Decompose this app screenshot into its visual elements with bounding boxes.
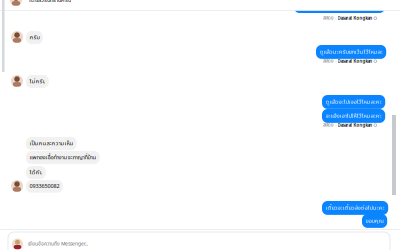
staticText: เป็นคนละความเห็น	[29, 139, 73, 148]
staticText: Dasarat Kongkan	[338, 16, 373, 21]
button[interactable]: ขอบคุณ	[362, 214, 387, 228]
staticText: เขียนข้อความถึง Messenger...	[28, 240, 88, 248]
button[interactable]: จะแจ้งเอาไปให้ไว้ไหมละคะ	[322, 109, 385, 123]
staticText: Dasarat Kongkan	[338, 123, 373, 128]
staticText: Dasarat Kongkan	[338, 59, 373, 64]
staticText: แพทองเอื้อทำงานจะภาญาที่บ้าน	[29, 153, 96, 162]
staticText: เดี๋ยวจะเดี๋ยวส่งต่อไปนะคะ	[326, 204, 385, 212]
staticText: ส่งโดย	[323, 122, 334, 128]
button[interactable]: ครับ	[26, 31, 43, 44]
button[interactable]: ดูแล้วนะครับยกเว้นไว้ไหมละ	[316, 45, 386, 59]
button[interactable]: ไม่ครับ	[26, 75, 49, 88]
button[interactable]: เดี๋ยวจะเดี๋ยวส่งต่อไปนะคะ	[322, 201, 388, 215]
staticText: ·	[335, 123, 336, 128]
button[interactable]: 0933650082	[26, 180, 63, 193]
button[interactable]: ดูแล้วจะไปเจอไว้ไหมละคะ	[322, 95, 385, 109]
staticText: ได้คับ	[29, 168, 42, 177]
staticText: จะแจ้งเอาไปให้ไว้ไหมละคะ	[326, 112, 382, 120]
button[interactable]: ได้คับ	[26, 166, 46, 179]
staticText: ดูแล้วนะครับยกเว้นไว้ไหมละ	[320, 48, 383, 56]
staticText: ครับ	[29, 33, 39, 42]
staticText: ขอบคุณ	[366, 217, 384, 225]
staticText: ส่งโดย	[323, 15, 334, 21]
staticText: ·	[335, 16, 336, 21]
staticText: ดูแล้วจะไปเจอไว้ไหมละคะ	[326, 98, 382, 106]
staticText: 0933650082	[29, 182, 59, 190]
staticText: ไม่ครับ	[29, 77, 45, 86]
button[interactable]: แพทองเอื้อทำงานจะภาญาที่บ้าน	[26, 151, 100, 164]
staticText: ·	[335, 59, 336, 64]
staticText: ได้แล้วรับทราบครับ	[29, 0, 71, 5]
staticText: ส่งโดย	[323, 58, 334, 64]
button[interactable]: เป็นคนละความเห็น	[26, 137, 77, 150]
button[interactable]: เขียนข้อความถึง Messenger...	[8, 232, 390, 250]
